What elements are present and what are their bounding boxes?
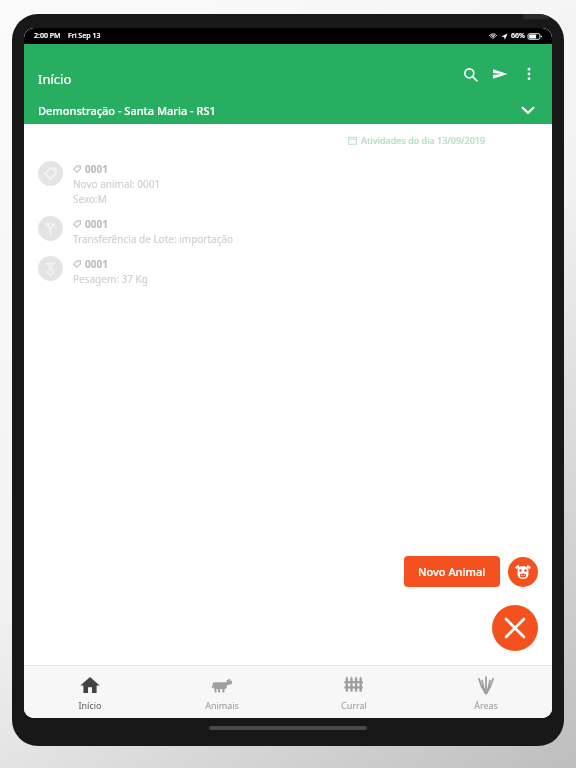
staticText: 2:00 PM — [34, 31, 61, 41]
button[interactable]: Áreas — [420, 666, 552, 718]
staticText: 0001 — [85, 257, 108, 271]
button[interactable]: 0001 — [24, 251, 552, 291]
staticText: Novo Animal — [418, 564, 486, 579]
staticText: 0001 — [85, 217, 108, 231]
button[interactable]: Mais opções — [516, 61, 542, 87]
staticText: Início — [78, 699, 102, 711]
button[interactable]: Enviar — [486, 60, 514, 88]
button[interactable]: 0001 — [24, 156, 552, 211]
button[interactable]: Fechar — [492, 605, 538, 651]
staticText: Fri Sep 13 — [68, 31, 101, 41]
button[interactable]: Curral — [288, 666, 420, 718]
staticText: Animais — [205, 699, 239, 711]
button[interactable]: 0001 — [24, 211, 552, 251]
staticText: Pesagem: 37 Kg — [73, 272, 148, 286]
staticText: Demonstração - Santa Maria - RS1 — [38, 103, 518, 118]
staticText: Sexo:M — [73, 192, 107, 206]
staticText: 0001 — [85, 162, 108, 176]
button[interactable]: Novo animal — [508, 557, 538, 587]
staticText: Início — [38, 70, 72, 88]
staticText: Novo animal: 0001 — [73, 177, 161, 191]
staticText: Curral — [341, 699, 367, 711]
staticText: 66% — [511, 31, 525, 41]
button[interactable]: Animais — [156, 666, 288, 718]
button[interactable]: Buscar — [456, 60, 484, 88]
staticText: Áreas — [474, 699, 498, 711]
staticText: Transferência de Lote: importação — [73, 232, 234, 246]
staticText: Atividades do dia 13/09/2019 — [361, 134, 486, 146]
button[interactable]: Início — [24, 666, 156, 718]
button[interactable]: Demonstração - Santa Maria - RS1 — [24, 96, 552, 124]
button[interactable]: Novo Animal — [404, 556, 500, 587]
